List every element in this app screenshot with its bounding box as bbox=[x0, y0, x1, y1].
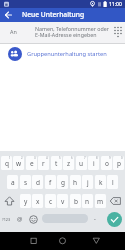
button[interactable] bbox=[107, 212, 122, 227]
staticText: @ bbox=[17, 215, 23, 223]
staticText: An bbox=[10, 28, 17, 35]
button[interactable]: c bbox=[45, 194, 56, 208]
staticText: t bbox=[55, 159, 58, 168]
staticText: u bbox=[79, 159, 84, 168]
button[interactable]: j bbox=[82, 175, 93, 189]
button[interactable]: q bbox=[1, 156, 12, 170]
button[interactable]: u bbox=[76, 156, 87, 170]
staticText: q bbox=[5, 159, 9, 168]
button[interactable]: b bbox=[70, 194, 81, 208]
button[interactable]: l bbox=[107, 175, 118, 189]
button[interactable]: w bbox=[13, 156, 24, 170]
button[interactable]: i bbox=[88, 156, 99, 170]
staticText: y bbox=[24, 197, 28, 206]
button[interactable]: h bbox=[70, 175, 81, 189]
button[interactable] bbox=[42, 214, 88, 223]
button[interactable]: d bbox=[32, 175, 43, 189]
staticText: s bbox=[24, 178, 28, 187]
staticText: w bbox=[16, 159, 22, 168]
button[interactable] bbox=[88, 234, 103, 248]
staticText: i bbox=[93, 159, 95, 168]
staticText: 1 bbox=[9, 156, 11, 160]
staticText: b bbox=[74, 197, 78, 206]
button[interactable] bbox=[0, 43, 125, 63]
staticText: r bbox=[42, 159, 45, 168]
staticText: n bbox=[85, 197, 90, 206]
button[interactable]: z bbox=[63, 156, 74, 170]
staticText: z bbox=[67, 159, 71, 168]
staticText: 8 bbox=[96, 156, 98, 160]
staticText: c bbox=[49, 197, 53, 206]
button[interactable] bbox=[55, 234, 70, 248]
button[interactable] bbox=[2, 194, 17, 208]
staticText: p bbox=[117, 159, 121, 168]
staticText: 0 bbox=[121, 156, 123, 160]
staticText: 3 bbox=[34, 156, 36, 160]
button[interactable] bbox=[108, 194, 123, 208]
button[interactable]: g bbox=[57, 175, 68, 189]
staticText: j bbox=[87, 178, 89, 187]
staticText: o bbox=[105, 159, 109, 168]
button[interactable]: s bbox=[20, 175, 31, 189]
staticText: d bbox=[36, 178, 40, 187]
staticText: e bbox=[30, 159, 34, 168]
button[interactable]: e bbox=[26, 156, 37, 170]
staticText: Gruppenunterhaltung starten bbox=[27, 50, 107, 58]
button[interactable]: a bbox=[7, 175, 18, 189]
button[interactable] bbox=[26, 234, 41, 248]
button[interactable]: o bbox=[101, 156, 112, 170]
staticText: 11:00 bbox=[109, 1, 122, 8]
button[interactable]: p bbox=[113, 156, 124, 170]
button[interactable] bbox=[1, 212, 15, 226]
button[interactable] bbox=[91, 212, 102, 226]
button[interactable] bbox=[15, 212, 26, 226]
staticText: k bbox=[99, 178, 103, 187]
staticText: E-Mail-Adresse eingeben bbox=[35, 31, 97, 38]
button[interactable] bbox=[0, 8, 20, 22]
staticText: 5 bbox=[59, 156, 61, 160]
staticText: 9 bbox=[109, 156, 111, 160]
staticText: f bbox=[49, 178, 52, 187]
button[interactable]: k bbox=[95, 175, 106, 189]
staticText: v bbox=[61, 197, 65, 206]
staticText: . bbox=[94, 213, 96, 223]
button[interactable] bbox=[28, 212, 39, 226]
staticText: 6 bbox=[71, 156, 73, 160]
button[interactable]: v bbox=[57, 194, 68, 208]
staticText: Namen, Telefonnummer oder bbox=[35, 25, 109, 32]
button[interactable]: f bbox=[45, 175, 56, 189]
button[interactable]: y bbox=[20, 194, 31, 208]
staticText: l bbox=[112, 178, 114, 187]
button[interactable]: n bbox=[82, 194, 93, 208]
staticText: 2 bbox=[21, 156, 23, 160]
staticText: m bbox=[97, 197, 104, 206]
button[interactable]: t bbox=[51, 156, 62, 170]
button[interactable]: r bbox=[38, 156, 49, 170]
staticText: 4 bbox=[46, 156, 48, 160]
staticText: Neue Unterhaltung bbox=[22, 10, 85, 19]
button[interactable]: x bbox=[32, 194, 43, 208]
button[interactable]: m bbox=[95, 194, 106, 208]
staticText: a bbox=[11, 178, 15, 187]
staticText: g bbox=[61, 178, 65, 187]
button[interactable] bbox=[0, 22, 125, 43]
staticText: h bbox=[73, 178, 78, 187]
staticText: ?123 bbox=[2, 217, 11, 222]
staticText: x bbox=[36, 197, 40, 206]
staticText: 7 bbox=[84, 156, 86, 160]
